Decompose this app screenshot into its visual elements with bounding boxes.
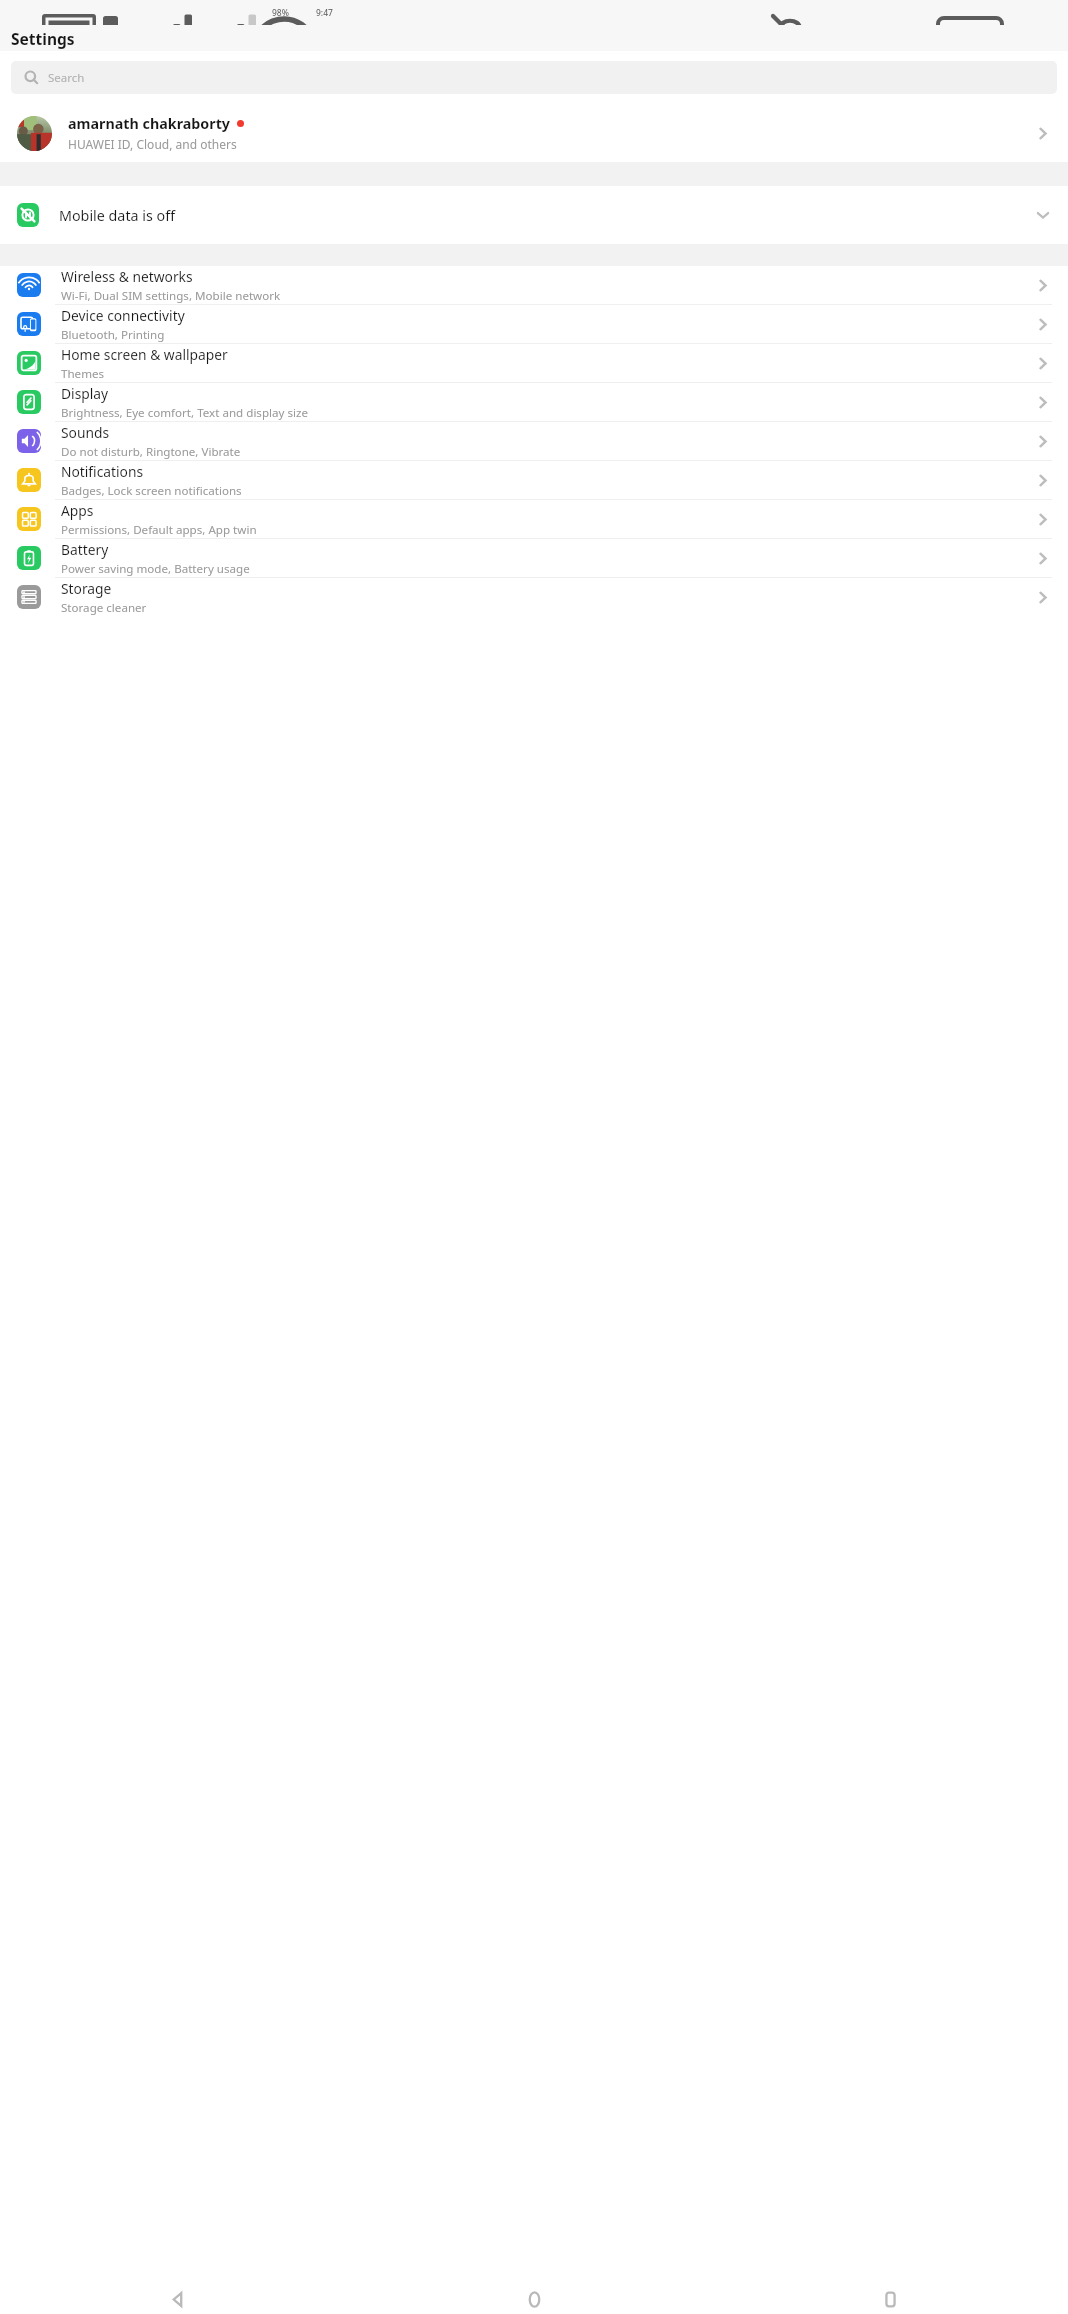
- staticText: Storage cleaner: [61, 600, 147, 616]
- button[interactable]: Device connectivity: [0, 305, 1068, 343]
- staticText: Bluetooth, Printing: [61, 327, 165, 343]
- staticText: Wireless & networks: [61, 267, 193, 286]
- staticText: Badges, Lock screen notifications: [61, 483, 242, 499]
- button[interactable]: Wireless & networks: [0, 266, 1068, 304]
- staticText: Device connectivity: [61, 306, 185, 325]
- staticText: Notifications: [61, 462, 144, 481]
- button[interactable]: Storage: [0, 578, 1068, 616]
- staticText: Settings: [11, 28, 75, 49]
- staticText: Display: [61, 384, 109, 403]
- button[interactable]: Battery: [0, 539, 1068, 577]
- button[interactable]: amarnath chakraborty: [0, 104, 1068, 162]
- button[interactable]: Recents: [712, 2284, 1068, 2314]
- button[interactable]: Notifications: [0, 461, 1068, 499]
- button[interactable]: Search: [11, 61, 1057, 94]
- button[interactable]: Sounds: [0, 422, 1068, 460]
- staticText: amarnath chakraborty: [68, 114, 231, 133]
- button[interactable]: Apps: [0, 500, 1068, 538]
- staticText: Brightness, Eye comfort, Text and displa…: [61, 405, 309, 421]
- button[interactable]: Display: [0, 383, 1068, 421]
- staticText: HUAWEI ID, Cloud, and others: [68, 136, 237, 152]
- staticText: Home screen & wallpaper: [61, 345, 228, 364]
- button[interactable]: Back: [0, 2284, 356, 2314]
- staticText: Battery: [61, 540, 109, 559]
- staticText: Storage: [61, 579, 112, 598]
- button[interactable]: Mobile data is off: [0, 186, 1068, 244]
- staticText: Search: [48, 70, 85, 86]
- staticText: Themes: [61, 366, 105, 382]
- button[interactable]: Home: [356, 2284, 712, 2314]
- other: Expand: [1035, 207, 1051, 223]
- staticText: Apps: [61, 501, 94, 520]
- staticText: 98%: [272, 7, 289, 19]
- staticText: Wi-Fi, Dual SIM settings, Mobile network: [61, 288, 281, 304]
- staticText: 9:47: [316, 7, 333, 19]
- staticText: Sounds: [61, 423, 110, 442]
- staticText: Mobile data is off: [59, 206, 1035, 225]
- staticText: Do not disturb, Ringtone, Vibrate: [61, 444, 241, 460]
- staticText: Permissions, Default apps, App twin: [61, 522, 257, 538]
- staticText: Power saving mode, Battery usage: [61, 561, 250, 577]
- button[interactable]: Home screen & wallpaper: [0, 344, 1068, 382]
